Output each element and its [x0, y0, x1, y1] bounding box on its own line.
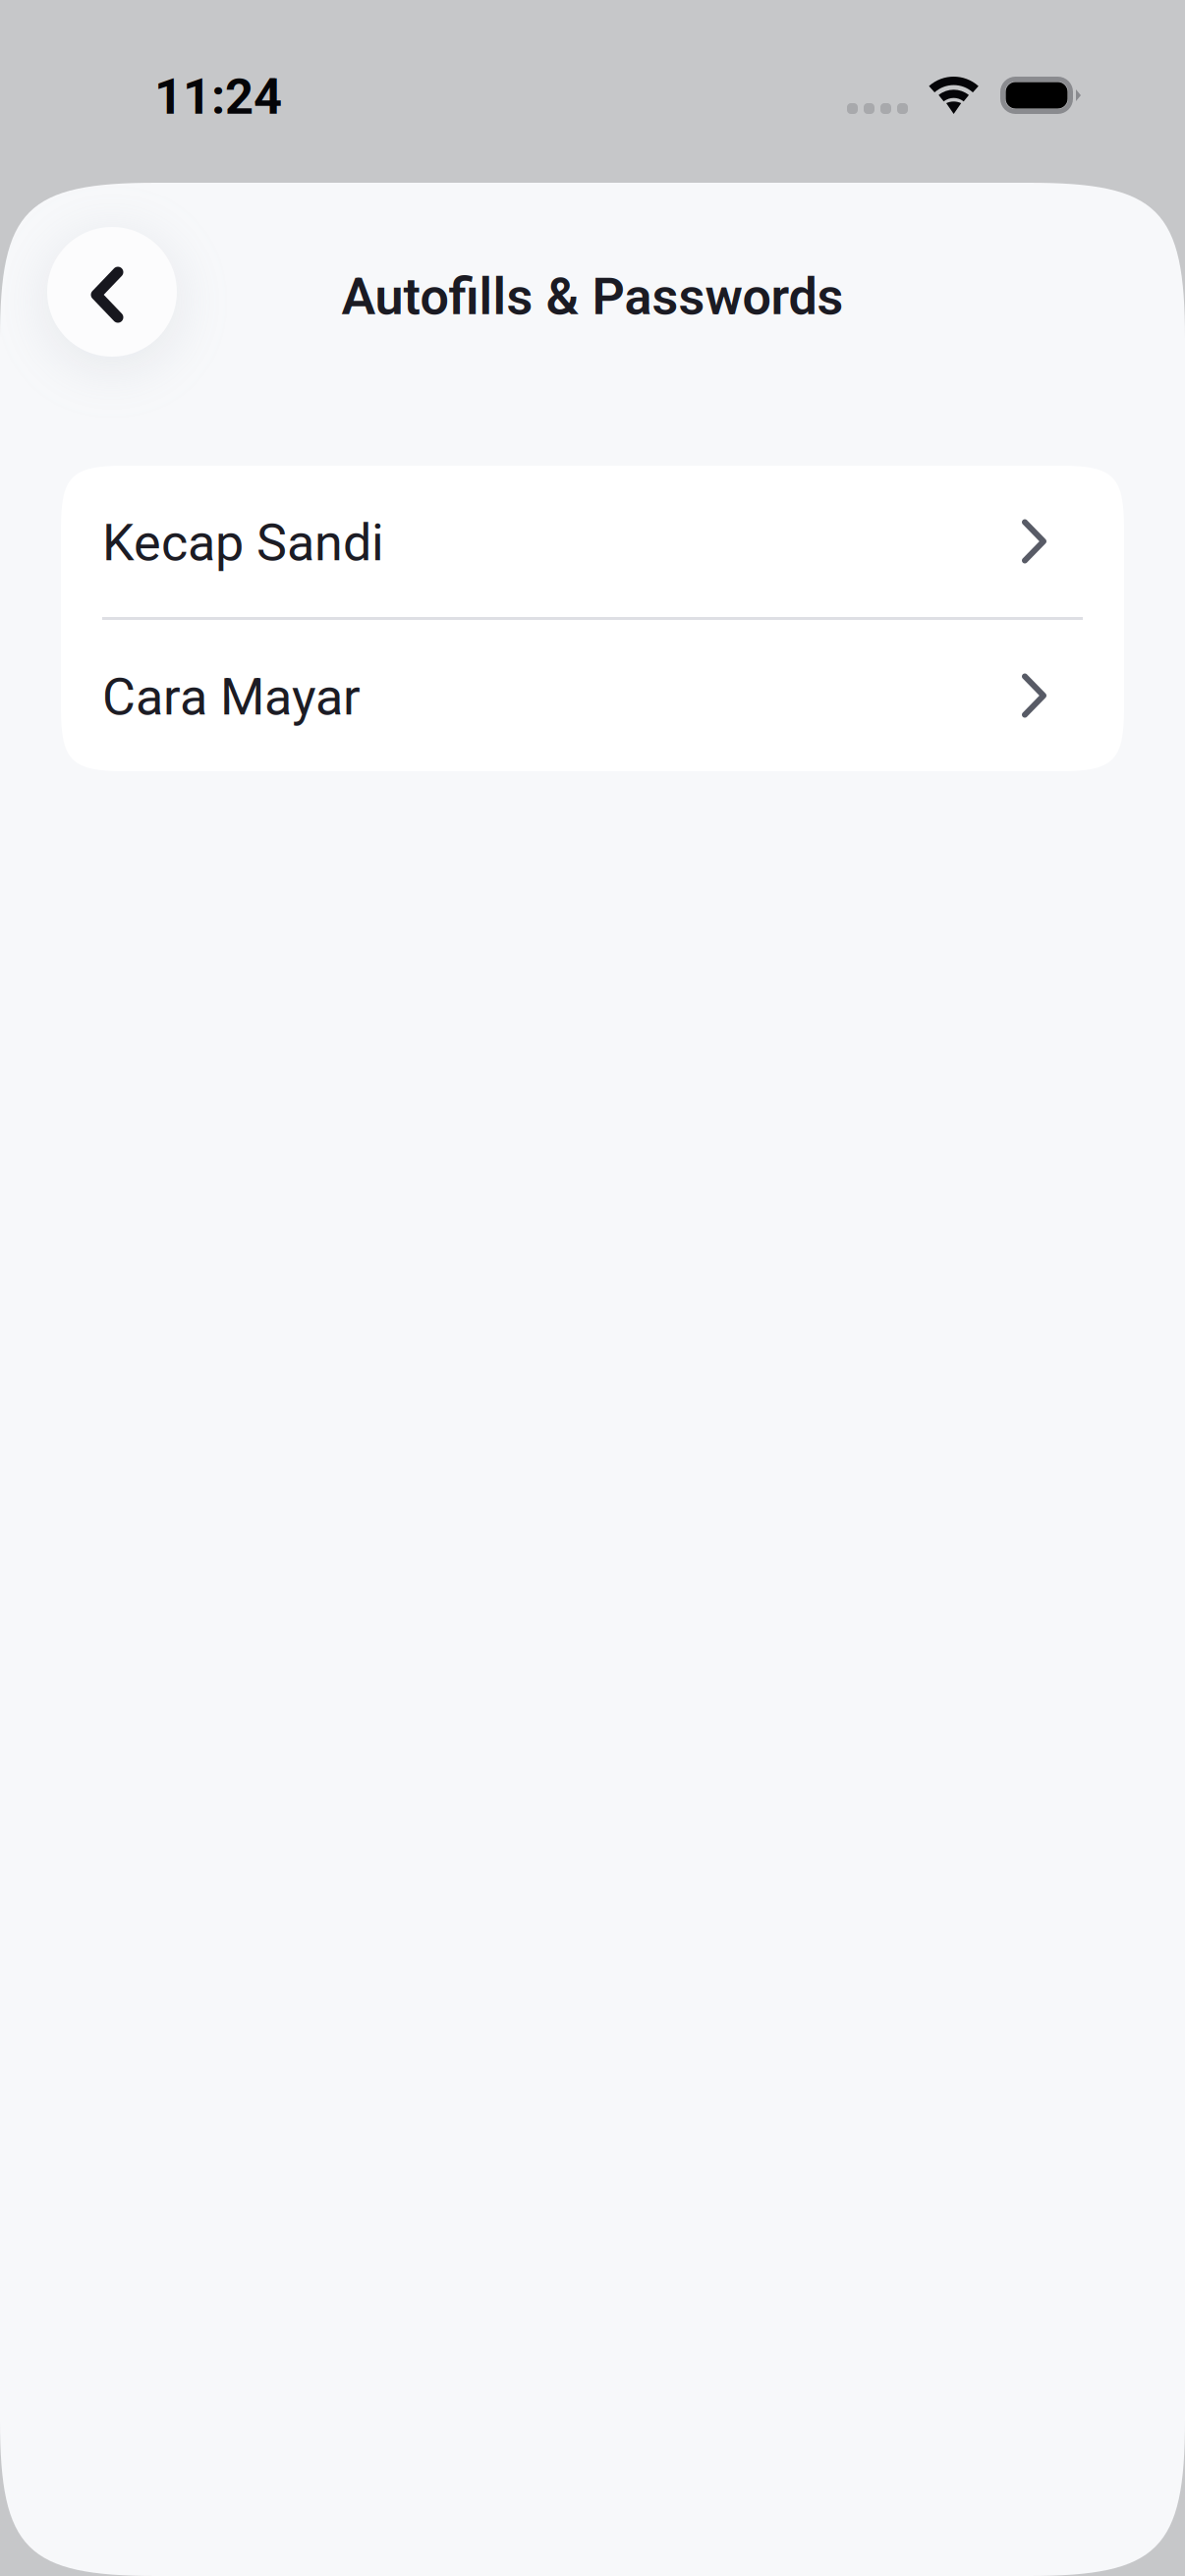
button[interactable]: Back [47, 227, 177, 357]
button[interactable]: Kecap Sandi [61, 466, 1124, 617]
staticText: Autofills & Passwords [341, 267, 844, 327]
staticText: Cara Mayar [102, 667, 361, 727]
staticText: Kecap Sandi [102, 513, 384, 573]
staticText: 11:24 [154, 68, 282, 126]
button[interactable]: Cara Mayar [61, 620, 1124, 771]
